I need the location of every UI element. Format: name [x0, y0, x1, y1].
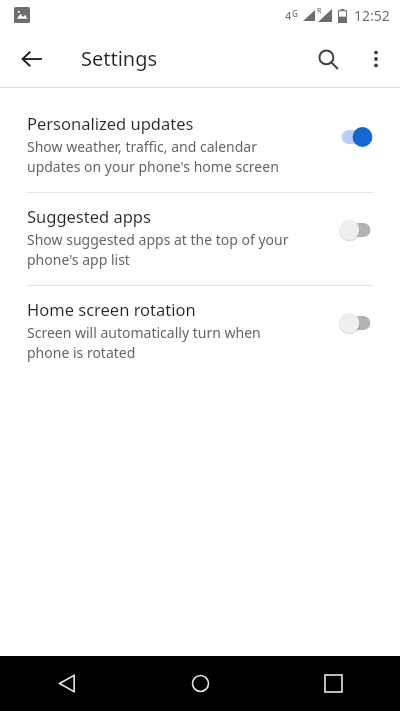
button[interactable]: Recents [267, 656, 400, 711]
staticText: Suggested apps [27, 205, 151, 227]
staticText: Home screen rotation [27, 298, 196, 320]
staticText: 12:52 [354, 6, 390, 25]
button[interactable]: More options [352, 35, 400, 83]
staticText: Screen will automatically turn when phon… [27, 323, 261, 362]
button[interactable]: Personalized updates [0, 100, 400, 192]
staticText: G [292, 8, 298, 19]
button[interactable]: Suggested apps [0, 193, 400, 285]
button[interactable]: Back [10, 37, 54, 81]
button[interactable]: Off [336, 219, 376, 241]
button[interactable]: Home [134, 656, 267, 711]
button[interactable]: Back [0, 656, 134, 711]
button[interactable]: On [336, 126, 376, 148]
staticText: Show suggested apps at the top of your p… [27, 230, 289, 269]
staticText: 4 [285, 8, 292, 23]
button[interactable]: Off [336, 312, 376, 334]
button[interactable]: Home screen rotation [0, 286, 400, 378]
button[interactable]: Search [304, 35, 352, 83]
staticText: R [317, 6, 322, 16]
staticText: Settings [81, 45, 158, 72]
staticText: Personalized updates [27, 112, 194, 134]
staticText: Show weather, traffic, and calendar upda… [27, 137, 279, 176]
